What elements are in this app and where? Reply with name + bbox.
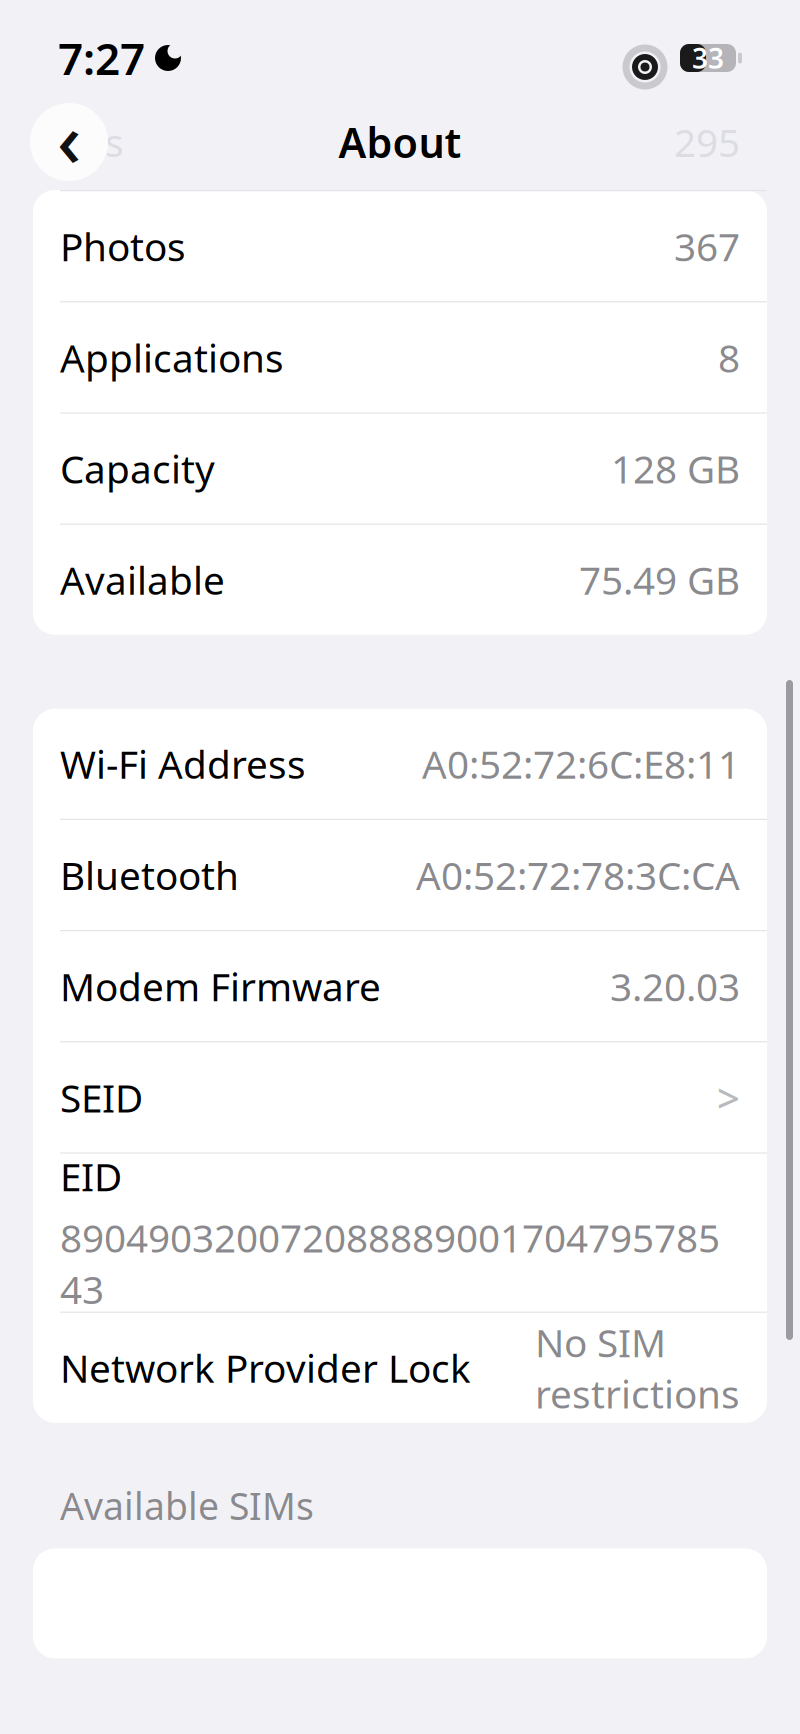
button[interactable]: EID [33, 1154, 767, 1312]
button[interactable]: Capacity [33, 414, 767, 524]
staticText: Network Provider Lock [60, 1342, 471, 1393]
staticText: eos [60, 116, 124, 168]
button[interactable]: Applications [33, 302, 767, 412]
staticText: Bluetooth [60, 849, 239, 901]
button[interactable]: Wi-Fi Address [33, 709, 767, 819]
staticText: Available SIMs [60, 1481, 314, 1530]
staticText: 7:27 [58, 29, 145, 87]
staticText: 75.49 GB [579, 554, 740, 605]
staticText: ‹ [57, 88, 81, 188]
staticText: 3.20.03 [610, 960, 740, 1012]
staticText: Available [60, 554, 225, 605]
staticText: Applications [60, 332, 284, 383]
staticText: About [338, 115, 461, 169]
button[interactable]: Network Provider Lock [33, 1313, 767, 1423]
staticText: 367 [674, 220, 740, 272]
button[interactable]: SEID [33, 1042, 767, 1152]
staticText: 89049032007208888900170479578543 [60, 1212, 720, 1315]
staticText: No SIM restrictions [535, 1316, 740, 1419]
staticText: Modem Firmware [60, 960, 381, 1012]
button[interactable]: Modem Firmware [33, 931, 767, 1041]
button[interactable]: Back [30, 103, 108, 181]
button[interactable]: Bluetooth [33, 820, 767, 930]
button[interactable]: Available [33, 525, 767, 635]
staticText: A0:52:72:6C:E8:11 [422, 738, 740, 789]
staticText: Wi-Fi Address [60, 738, 306, 789]
staticText: EID [60, 1151, 122, 1202]
staticText: Photos [60, 220, 186, 272]
staticText: A0:52:72:78:3C:CA [416, 849, 740, 901]
staticText: 33 [692, 39, 724, 77]
staticText: 8 [718, 332, 740, 383]
staticText: 295 [674, 116, 740, 168]
staticText: > [717, 1071, 740, 1124]
staticText: SEID [60, 1072, 143, 1123]
staticText: Capacity [60, 443, 215, 494]
staticText: 128 GB [611, 443, 740, 494]
button[interactable]: Photos [33, 191, 767, 301]
